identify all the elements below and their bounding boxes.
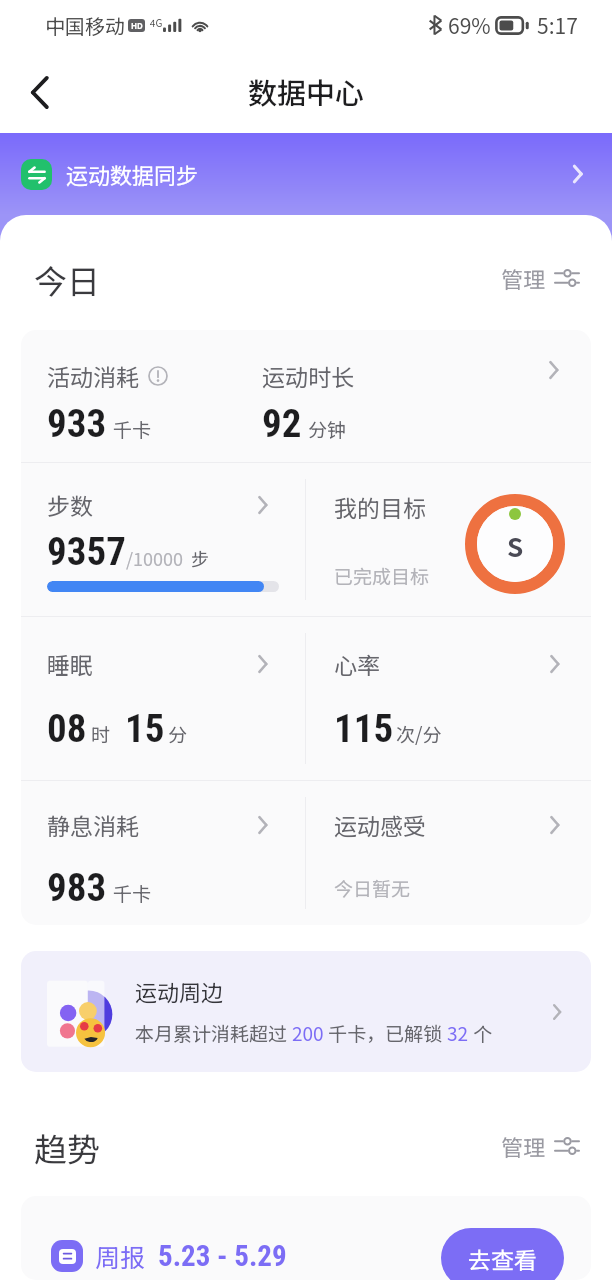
staticText: 933: [47, 401, 107, 447]
staticText: 趋势: [34, 1124, 100, 1172]
staticText: 活动消耗: [47, 359, 139, 392]
staticText: 92: [262, 401, 302, 447]
staticText: 周报: [95, 1238, 146, 1274]
staticText: 管理: [501, 262, 546, 294]
staticText: 管理: [501, 1130, 546, 1162]
staticText: 静息消耗: [47, 808, 139, 841]
staticText: 千卡: [113, 415, 152, 443]
button[interactable]: 步数: [21, 463, 305, 616]
staticText: 心率: [334, 647, 380, 680]
staticText: 中国移动: [45, 11, 125, 40]
staticText: 15: [125, 706, 165, 752]
staticText: 运动感受: [334, 808, 426, 841]
button[interactable]: 运动数据同步: [0, 133, 612, 215]
staticText: 我的目标: [334, 490, 426, 523]
staticText: 次/分: [396, 720, 442, 748]
staticText: /10000: [126, 545, 184, 571]
staticText: 5.23 - 5.29: [158, 1239, 287, 1273]
staticText: 运动数据同步: [66, 158, 199, 190]
staticText: S: [507, 527, 524, 565]
staticText: 步数: [47, 488, 93, 521]
staticText: 已完成目标: [334, 562, 430, 590]
staticText: 69%: [448, 10, 491, 40]
button[interactable]: 我的目标: [306, 463, 591, 616]
staticText: 数据中心: [248, 70, 365, 112]
staticText: 4G: [150, 15, 163, 29]
staticText: 分: [168, 720, 188, 748]
staticText: HD: [131, 20, 143, 32]
staticText: 步: [191, 545, 209, 571]
staticText: 今日: [34, 256, 100, 304]
staticText: 115: [334, 706, 394, 752]
button[interactable]: 管理: [498, 258, 582, 298]
button[interactable]: Back: [14, 66, 66, 118]
button[interactable]: 去查看: [441, 1228, 564, 1280]
staticText: 个: [469, 1019, 493, 1047]
button[interactable]: 睡眠: [21, 617, 305, 780]
staticText: 去查看: [468, 1242, 537, 1275]
staticText: 32: [447, 1019, 469, 1047]
button[interactable]: 管理: [498, 1126, 582, 1166]
staticText: 睡眠: [47, 647, 93, 680]
staticText: 200: [292, 1019, 324, 1047]
staticText: 千卡: [113, 879, 152, 907]
button[interactable]: 运动周边: [21, 951, 591, 1072]
staticText: 运动时长: [262, 359, 354, 392]
staticText: 分钟: [308, 415, 347, 443]
staticText: 9357: [47, 529, 126, 575]
button[interactable]: 静息消耗: [21, 781, 305, 925]
staticText: 今日暂无: [334, 874, 411, 902]
staticText: 运动周边: [135, 975, 224, 1007]
staticText: 时: [91, 720, 111, 748]
button[interactable]: 心率: [306, 617, 591, 780]
staticText: 本月累计消耗超过: [135, 1019, 292, 1047]
staticText: 千卡，已解锁: [324, 1019, 447, 1047]
staticText: 983: [47, 865, 107, 911]
button[interactable]: 运动感受: [306, 781, 591, 925]
staticText: 08: [47, 706, 87, 752]
button[interactable]: 活动消耗: [21, 330, 591, 462]
staticText: 5:17: [537, 10, 578, 40]
